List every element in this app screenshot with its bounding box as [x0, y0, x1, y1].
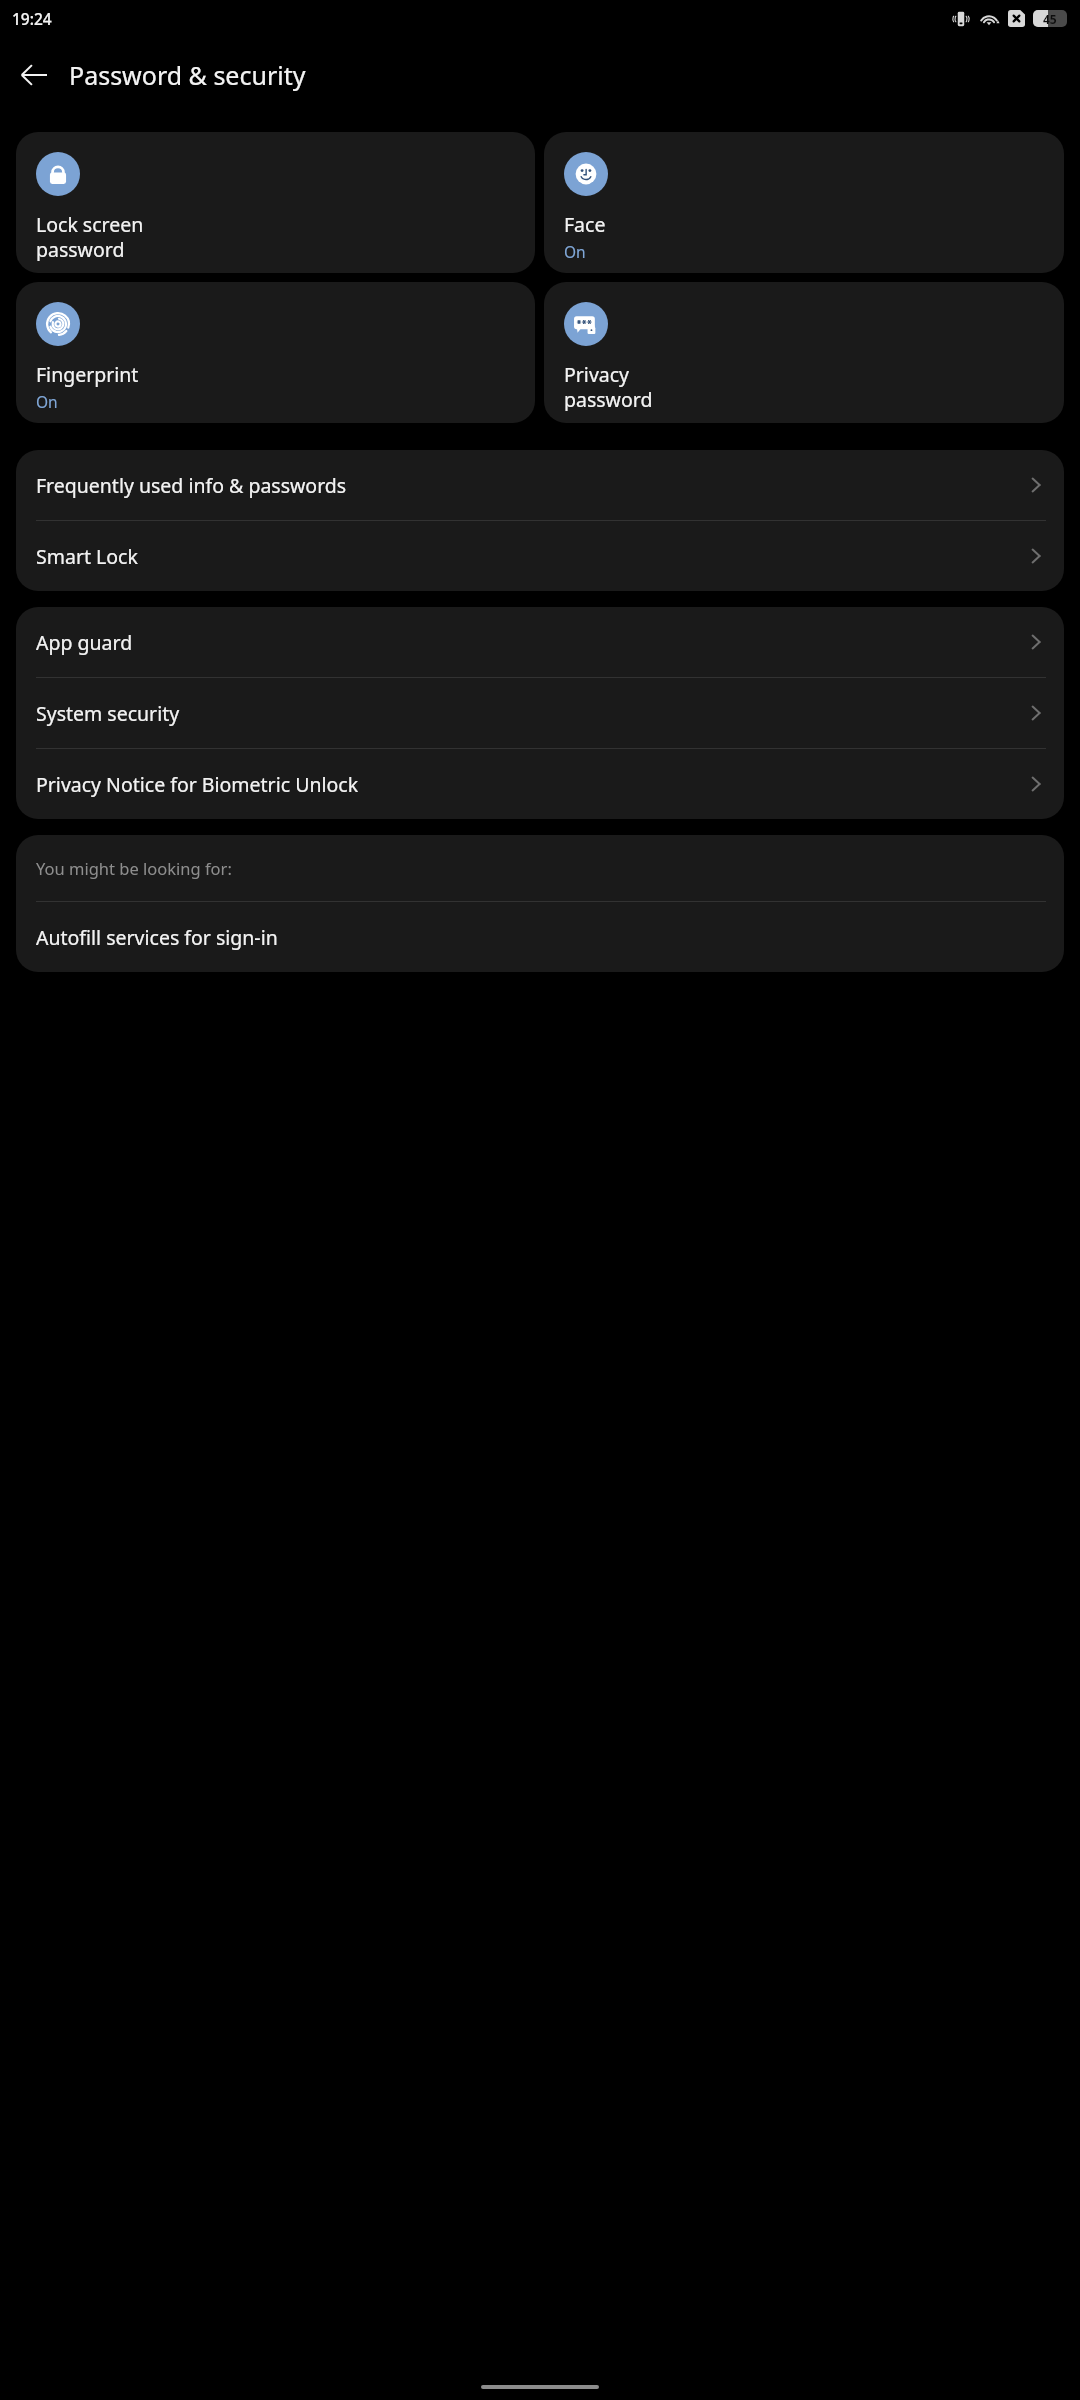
staticText: Fingerprint — [36, 361, 139, 388]
staticText: Password & security — [69, 58, 306, 92]
button[interactable]: System security — [16, 678, 1064, 748]
staticText: On — [564, 241, 586, 261]
button[interactable]: Frequently used info & passwords — [16, 450, 1064, 520]
button[interactable]: Autofill services for sign-in — [16, 902, 1064, 972]
button[interactable]: Privacy Notice for Biometric Unlock — [16, 749, 1064, 819]
button[interactable]: Smart Lock — [16, 521, 1064, 591]
button[interactable]: Face — [544, 132, 1064, 273]
button[interactable]: App guard — [16, 607, 1064, 677]
staticText: Frequently used info & passwords — [36, 472, 1026, 499]
button[interactable]: Back — [10, 51, 58, 99]
button[interactable]: Lock screen password — [16, 132, 535, 273]
staticText: App guard — [36, 629, 1026, 656]
staticText: Lock screen password — [36, 211, 144, 261]
button[interactable]: Privacy password — [544, 282, 1064, 423]
staticText: System security — [36, 700, 1026, 727]
button[interactable]: Fingerprint — [16, 282, 535, 423]
staticText: Autofill services for sign-in — [36, 924, 278, 951]
staticText: 19:24 — [12, 8, 52, 29]
staticText: Smart Lock — [36, 543, 1026, 570]
staticText: 45 — [1043, 11, 1057, 27]
staticText: Face — [564, 211, 606, 238]
staticText: Privacy Notice for Biometric Unlock — [36, 771, 1026, 798]
staticText: Privacy password — [564, 361, 653, 411]
staticText: On — [36, 391, 58, 411]
staticText: You might be looking for: — [36, 857, 232, 879]
